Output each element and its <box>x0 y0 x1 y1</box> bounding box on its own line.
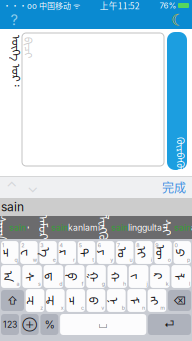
staticText: ᠊ <box>103 218 105 237</box>
staticText: ᠹ <box>71 266 79 287</box>
button[interactable]: l <box>171 266 191 287</box>
staticText: ᠰᠠᠢ <box>160 217 177 238</box>
staticText: 2 <box>21 242 24 248</box>
staticText: ᠥ <box>156 242 171 263</box>
staticText: 123 <box>3 319 17 330</box>
button[interactable]: e <box>39 242 57 263</box>
staticText: ᠶ <box>103 242 109 263</box>
staticText: l <box>189 280 190 287</box>
staticText: ᠊ <box>165 218 167 237</box>
staticText: p <box>187 256 190 263</box>
button[interactable]: ᠰᠠᠢ <box>166 216 192 239</box>
staticText: ⇧ <box>7 294 18 307</box>
button[interactable]: m <box>148 290 166 311</box>
staticText: ᠭ <box>91 266 101 287</box>
button[interactable]: Next field <box>22 177 43 198</box>
button[interactable]: a <box>1 266 21 287</box>
button[interactable]: 完成 <box>157 177 191 198</box>
button[interactable]: ⌴ <box>60 314 146 335</box>
button[interactable]: f <box>65 266 84 287</box>
staticText: sain <box>51 222 68 233</box>
staticText: n <box>142 304 145 311</box>
button[interactable]: Return <box>148 314 191 335</box>
staticText: ⌄ <box>27 178 38 196</box>
staticText: ᠬ <box>112 266 122 287</box>
staticText: 4 <box>59 242 62 248</box>
button[interactable]: r <box>58 242 76 263</box>
staticText: k <box>166 280 169 287</box>
staticText: ᠠᠮᠤᠷ <box>33 217 58 238</box>
staticText: ᠵ <box>136 266 142 287</box>
staticText: q <box>14 256 17 263</box>
staticText: ᠼ <box>50 290 61 311</box>
staticText: 3 <box>40 242 43 248</box>
staticText: ᠴ <box>71 290 80 311</box>
staticText: ⌫ <box>173 294 186 307</box>
staticText: 8 <box>136 242 139 248</box>
button[interactable]: g <box>86 266 106 287</box>
button[interactable]: ᠯᠢᠩᠭᠦ <box>103 216 168 239</box>
button[interactable]: i <box>135 242 153 263</box>
button[interactable]: w <box>20 242 38 263</box>
button[interactable]: z <box>26 290 44 311</box>
staticText: ᠰ <box>28 266 37 287</box>
button[interactable]: y <box>97 242 114 263</box>
staticText: x <box>61 304 64 311</box>
staticText: ⏎ <box>164 318 175 331</box>
staticText: z <box>40 304 43 311</box>
button[interactable]: Shift <box>1 290 24 311</box>
staticText: sain <box>111 222 128 233</box>
button[interactable]: o <box>154 242 172 263</box>
staticText: ᠩ <box>152 290 161 311</box>
staticText: i <box>151 256 152 263</box>
button[interactable]: x <box>46 290 65 311</box>
staticText: ᠊ <box>29 218 31 237</box>
button[interactable]: ᠠᠮᠤᠷ <box>43 216 106 239</box>
staticText: ᠳ <box>49 266 58 287</box>
button[interactable]: Previous field <box>1 177 22 198</box>
button[interactable]: Symbols <box>40 314 58 335</box>
staticText: •••oo 中国移动 ᯤ <box>3 0 80 11</box>
button[interactable]: n <box>127 290 146 311</box>
button[interactable]: Numbers <box>1 314 19 335</box>
button[interactable]: u <box>116 242 133 263</box>
staticText: ⌴ <box>99 319 108 330</box>
button[interactable]: Next keyboard <box>21 314 39 335</box>
staticText: g <box>102 280 105 287</box>
staticText: ᠬᠥᠷᠪᠡᠭᠦᠯᠬᠦ <box>158 152 192 170</box>
button[interactable]: v <box>87 290 105 311</box>
button[interactable]: b <box>107 290 126 311</box>
staticText: ᠪᠢᠴᠢ <box>13 45 34 63</box>
button[interactable]: s <box>22 266 42 287</box>
button[interactable]: ᠰᠠᠶᠢᠨ <box>1 216 32 239</box>
staticText: y <box>110 256 113 263</box>
staticText: 5 <box>79 242 82 248</box>
staticText: ᠯ <box>178 266 185 287</box>
button[interactable]: j <box>129 266 148 287</box>
staticText: 完成 <box>162 179 186 196</box>
staticText: ᠷ <box>64 242 70 263</box>
button[interactable]: Night mode <box>164 11 192 29</box>
staticText: ᠡ <box>43 242 53 263</box>
button[interactable]: d <box>44 266 63 287</box>
staticText: ⌃ <box>6 178 17 196</box>
button[interactable]: k <box>150 266 170 287</box>
staticText: 1 <box>2 242 4 248</box>
button[interactable]: Delete <box>168 290 191 311</box>
staticText: f <box>81 280 83 287</box>
staticText: 9 <box>155 242 158 248</box>
staticText: w <box>33 256 37 263</box>
button[interactable]: h <box>107 266 127 287</box>
button[interactable]: q <box>1 242 18 263</box>
button[interactable]: t <box>78 242 95 263</box>
staticText: ᠢ <box>138 242 150 263</box>
staticText: j <box>146 280 147 287</box>
staticText: e <box>53 256 56 263</box>
button[interactable]: Help <box>0 11 28 29</box>
button[interactable]: ᠬᠥᠷᠪᠡᠭᠦᠯᠬᠦ <box>167 32 187 170</box>
button[interactable]: c <box>66 290 85 311</box>
button[interactable]: p <box>173 242 191 263</box>
staticText: ᠤ <box>119 242 130 263</box>
staticText: ᠠ <box>5 266 16 287</box>
staticText: ⊕ <box>22 318 37 331</box>
